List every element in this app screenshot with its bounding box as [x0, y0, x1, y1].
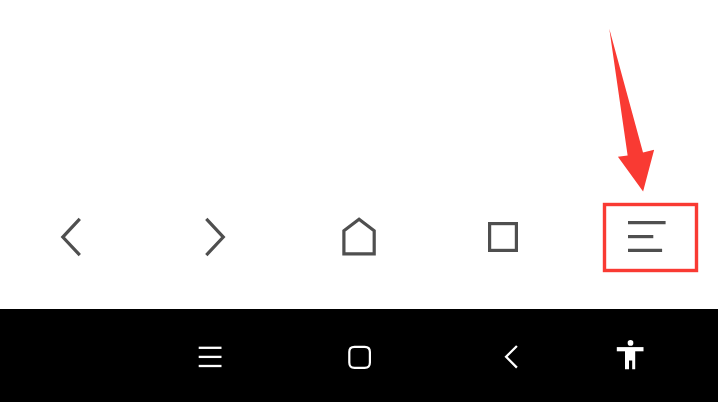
- button[interactable]: Recent apps: [187, 334, 233, 380]
- button[interactable]: Back: [36, 202, 106, 272]
- button[interactable]: Tabs: [468, 202, 538, 272]
- button[interactable]: Forward: [180, 202, 250, 272]
- button[interactable]: Menu: [602, 202, 699, 273]
- button[interactable]: Back: [487, 334, 533, 380]
- button[interactable]: Home: [336, 334, 382, 380]
- button[interactable]: Accessibility: [607, 334, 653, 380]
- button[interactable]: Home: [324, 202, 394, 272]
